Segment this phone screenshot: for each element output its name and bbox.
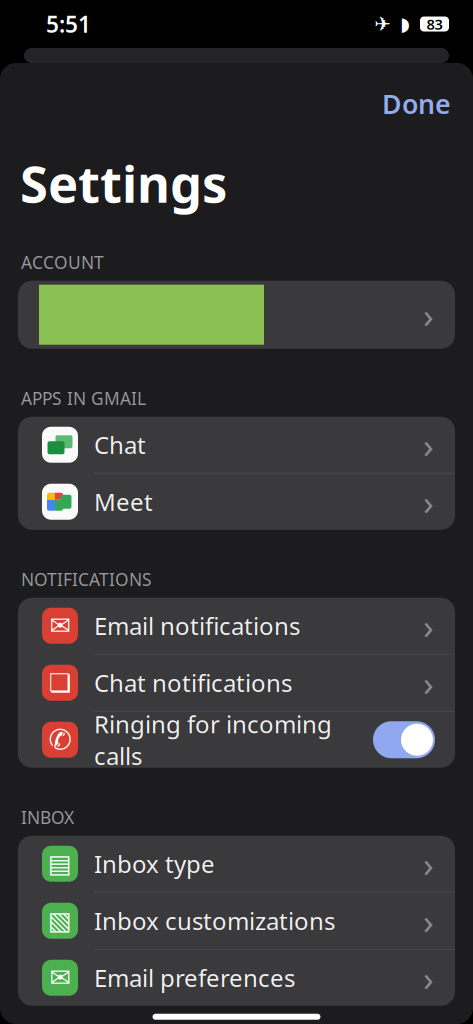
staticText: ✉ [49, 963, 70, 992]
staticText: › [423, 422, 434, 468]
staticText: Inbox type [94, 848, 215, 880]
staticText: Ringing for incoming calls [94, 708, 332, 772]
staticText: ✉ [49, 611, 70, 640]
button[interactable]: ✆ [18, 712, 455, 768]
staticText: ✈ [374, 13, 391, 35]
staticText: ▤ [48, 849, 72, 878]
button[interactable]: ✉ [18, 950, 455, 1006]
staticText: › [423, 479, 434, 525]
staticText: Email notifications [94, 610, 300, 642]
staticText: Settings [20, 149, 227, 217]
staticText: › [423, 292, 434, 338]
button[interactable]: ✉ [18, 598, 455, 654]
staticText: › [423, 660, 434, 706]
button[interactable]: › [18, 281, 455, 349]
staticText: ❏ [48, 668, 71, 697]
staticText: Inbox customizations [94, 905, 335, 937]
staticText: 83 [426, 14, 442, 34]
staticText: Email preferences [94, 962, 295, 994]
staticText: › [423, 603, 434, 649]
staticText: Done [382, 86, 451, 121]
staticText: ◗ [400, 13, 410, 35]
button[interactable]: Done [360, 76, 473, 131]
staticText: ✆ [48, 724, 71, 756]
staticText: NOTIFICATIONS [21, 568, 152, 591]
staticText: ACCOUNT [21, 251, 104, 274]
staticText: Chat [94, 429, 146, 461]
button[interactable]: ▤ [18, 836, 455, 892]
staticText: › [423, 955, 434, 1001]
staticText: ▧ [48, 906, 72, 935]
staticText: Meet [94, 486, 153, 518]
staticText: Chat notifications [94, 667, 292, 699]
staticText: › [423, 841, 434, 887]
button[interactable]: Chat [18, 417, 455, 473]
staticText: › [423, 898, 434, 944]
staticText: APPS IN GMAIL [21, 387, 146, 410]
staticText: 5:51 [46, 9, 91, 39]
button[interactable]: ❏ [18, 655, 455, 711]
button[interactable]: ▧ [18, 893, 455, 949]
button[interactable]: Meet [18, 474, 455, 530]
staticText: INBOX [21, 806, 74, 829]
